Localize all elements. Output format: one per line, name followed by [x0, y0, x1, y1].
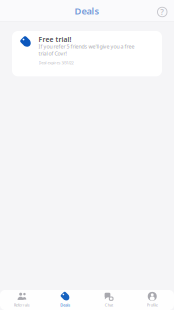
- staticText: Free trial!: [38, 35, 71, 44]
- staticText: Deals: [74, 5, 99, 17]
- staticText: If you refer 5 friends we'll give you a …: [38, 43, 134, 57]
- staticText: Deals: [60, 302, 70, 308]
- button[interactable]: Free trial!: [12, 31, 162, 76]
- staticText: Chat: [105, 302, 113, 308]
- staticText: Deal expires 3/31/22: [38, 60, 73, 65]
- staticText: Referrals: [14, 302, 30, 308]
- button[interactable]: Referrals: [0, 288, 43, 310]
- staticText: Profile: [147, 302, 158, 308]
- button[interactable]: Help: [152, 2, 174, 20]
- button[interactable]: Profile: [130, 288, 174, 310]
- staticText: ?: [160, 7, 164, 17]
- button[interactable]: Chat: [87, 288, 130, 310]
- button[interactable]: Deals: [43, 288, 87, 310]
